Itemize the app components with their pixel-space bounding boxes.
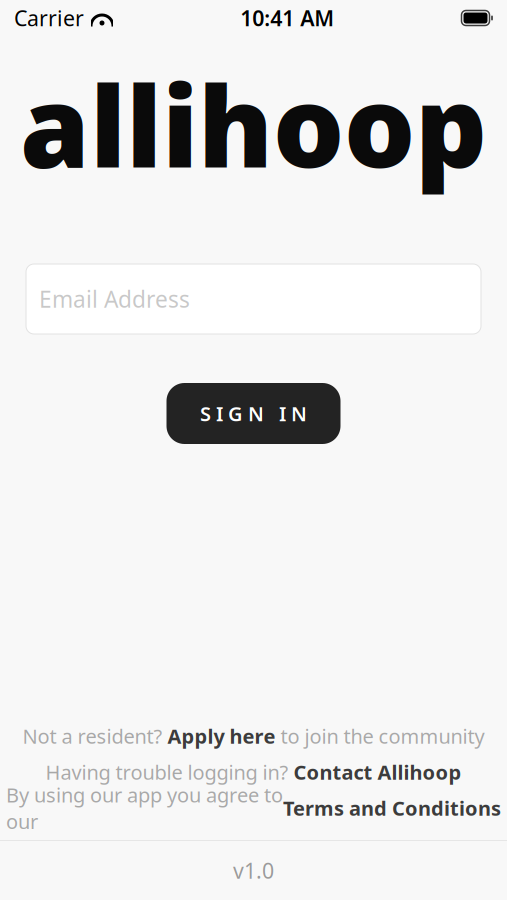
staticText: v1.0 <box>233 856 274 885</box>
button[interactable]: Not a resident? <box>0 718 507 754</box>
staticText: S I G N I N <box>200 400 307 427</box>
staticText: allihoop <box>20 50 487 198</box>
button[interactable]: S I G N I N <box>166 383 340 444</box>
staticText: Terms and Conditions <box>283 795 501 821</box>
staticText: Not a resident? <box>22 723 167 749</box>
button[interactable]: By using our app you agree to our <box>0 790 507 826</box>
staticText: Contact Allihoop <box>293 759 461 785</box>
staticText: 10:41 AM <box>240 4 334 32</box>
staticText: Email Address <box>39 284 190 314</box>
staticText: Carrier <box>14 4 84 32</box>
staticText: to join the community <box>275 723 484 749</box>
staticText: Apply here <box>167 723 275 749</box>
staticText: Having trouble logging in? <box>45 759 293 785</box>
button[interactable]: Having trouble logging in? <box>0 754 507 790</box>
staticText: By using our app you agree to our <box>6 781 283 834</box>
